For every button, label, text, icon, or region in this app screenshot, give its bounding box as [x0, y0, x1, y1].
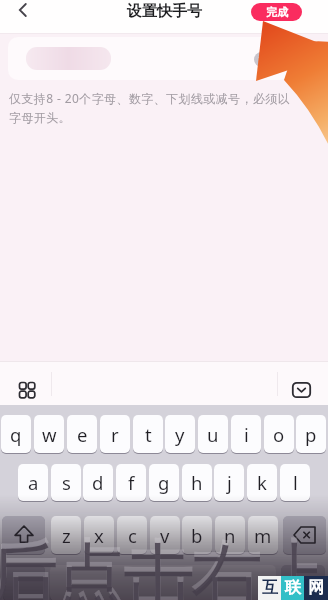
staticText: q	[10, 422, 22, 447]
staticText: 完成	[266, 5, 288, 19]
button[interactable]	[8, 37, 290, 80]
button[interactable]: z	[51, 516, 81, 554]
staticText: l	[293, 470, 298, 495]
button[interactable]: s	[51, 464, 81, 501]
staticText: z	[62, 523, 71, 548]
button[interactable]	[6, 0, 40, 20]
staticText: j	[227, 470, 232, 495]
staticText: i	[244, 422, 249, 447]
staticText: 后点击右上角	[0, 528, 317, 600]
button[interactable]: j	[214, 464, 244, 501]
staticText: p	[305, 422, 317, 447]
button[interactable]: v	[150, 516, 180, 554]
staticText: 联	[285, 578, 301, 598]
staticText: v	[160, 523, 170, 548]
staticText: u	[207, 422, 219, 447]
staticText: w	[42, 422, 57, 447]
staticText: f	[128, 470, 135, 495]
button[interactable]: x	[84, 516, 114, 554]
staticText: b	[191, 523, 203, 548]
staticText: h	[191, 470, 203, 495]
button[interactable]: n	[215, 516, 245, 554]
button[interactable]: b	[182, 516, 212, 554]
staticText: y	[175, 422, 185, 447]
button[interactable]: k	[247, 464, 277, 501]
staticText: t	[145, 422, 152, 447]
button[interactable]	[2, 516, 45, 554]
staticText: 设置快手号	[127, 2, 202, 21]
button[interactable]: a	[18, 464, 48, 501]
button[interactable]: l	[280, 464, 310, 501]
button[interactable]	[286, 376, 316, 404]
staticText: s	[62, 470, 71, 495]
staticText: 网	[308, 578, 324, 598]
staticText: e	[77, 422, 88, 447]
button[interactable]	[254, 52, 269, 67]
button[interactable]: g	[149, 464, 179, 501]
button[interactable]	[50, 565, 276, 600]
button[interactable]: q	[1, 415, 31, 453]
button[interactable]: e	[67, 415, 97, 453]
button[interactable]: i	[231, 415, 261, 453]
button[interactable]	[12, 376, 42, 404]
button[interactable]: u	[198, 415, 228, 453]
staticText: d	[92, 470, 104, 495]
staticText: 后点击右上角	[0, 533, 317, 600]
button[interactable]: 完成	[251, 3, 302, 21]
button[interactable]: t	[133, 415, 163, 453]
button[interactable]	[3, 565, 45, 600]
staticText: o	[273, 422, 285, 447]
button[interactable]: c	[117, 516, 147, 554]
staticText: n	[224, 523, 236, 548]
button[interactable]	[281, 565, 325, 600]
button[interactable]: h	[182, 464, 212, 501]
button[interactable]: y	[165, 415, 195, 453]
staticText: 仅支持8 - 20个字母、数字、下划线或减号，必须以 字母开头。	[9, 90, 291, 125]
button[interactable]: r	[100, 415, 130, 453]
button[interactable]: p	[296, 415, 326, 453]
staticText: k	[257, 470, 267, 495]
button[interactable]: d	[83, 464, 113, 501]
staticText: x	[94, 523, 104, 548]
staticText: 互	[262, 578, 278, 598]
staticText: a	[28, 470, 39, 495]
staticText: m	[254, 523, 272, 548]
button[interactable]: o	[264, 415, 294, 453]
button[interactable]: w	[34, 415, 64, 453]
staticText: g	[158, 470, 170, 495]
staticText: c	[128, 523, 137, 548]
button[interactable]: m	[248, 516, 278, 554]
button[interactable]: f	[116, 464, 146, 501]
button[interactable]	[283, 516, 326, 554]
staticText: r	[111, 422, 119, 447]
